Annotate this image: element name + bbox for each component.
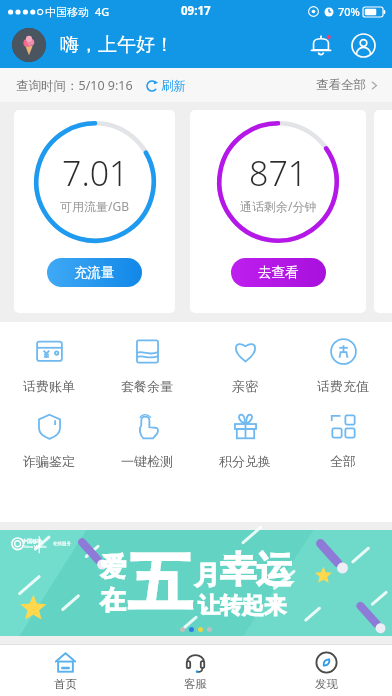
button[interactable]: 871 <box>190 110 366 313</box>
staticText: 7.01 <box>62 150 129 196</box>
staticText: 09:17 <box>181 3 211 19</box>
staticText: 亲密 <box>232 378 258 394</box>
button[interactable]: 一键检测 <box>98 411 196 469</box>
staticText: 让 <box>198 592 220 620</box>
staticText: 积分兑换 <box>219 453 271 469</box>
button[interactable]: 积分兑换 <box>196 411 294 469</box>
staticText: 客服 <box>184 677 207 691</box>
staticText: 可用流量/GB <box>60 198 130 214</box>
button[interactable]: 查看全部 <box>316 77 379 93</box>
button[interactable]: 套餐余量 <box>98 336 196 394</box>
button[interactable]: 去查看 <box>231 258 326 287</box>
staticText: 70% <box>338 4 360 19</box>
button[interactable]: Profile <box>348 30 378 60</box>
staticText: 刷新 <box>161 78 186 94</box>
staticText: 五 <box>128 543 192 624</box>
staticText: 4G <box>95 4 110 19</box>
staticText: 爱 <box>100 551 126 584</box>
button[interactable]: 发现 <box>261 645 392 696</box>
staticText: 通话剩余/分钟 <box>240 198 317 214</box>
staticText: 话费账单 <box>23 378 75 394</box>
staticText: 全部 <box>330 453 356 469</box>
button[interactable]: 充流量 <box>47 258 142 287</box>
button[interactable]: 7.01 <box>14 110 175 313</box>
button[interactable]: 诈骗鉴定 <box>0 411 98 469</box>
button[interactable]: 客服 <box>130 645 261 696</box>
button[interactable]: 话费账单 <box>0 336 98 394</box>
staticText: 一键检测 <box>121 453 173 469</box>
button[interactable]: Promotion banner <box>0 530 392 636</box>
staticText: 查看全部 <box>316 77 366 93</box>
staticText: 在线服务 <box>53 541 71 547</box>
button[interactable]: 亲密 <box>196 336 294 394</box>
staticText: 转起来 <box>220 592 286 620</box>
button[interactable]: 全部 <box>294 411 392 469</box>
staticText: 月 <box>194 559 220 592</box>
staticText: 充流量 <box>74 264 115 281</box>
staticText: 去查看 <box>258 264 299 281</box>
button[interactable]: 刷新 <box>146 78 186 94</box>
staticText: 发现 <box>315 677 338 691</box>
staticText: 871 <box>249 150 308 196</box>
staticText: 在 <box>100 584 126 617</box>
staticText: 幸运 <box>220 547 292 592</box>
button[interactable]: Avatar <box>12 28 46 62</box>
staticText: 套餐余量 <box>121 378 173 394</box>
staticText: 中国移动 <box>45 5 89 19</box>
staticText: 诈骗鉴定 <box>23 453 75 469</box>
staticText: 首页 <box>54 677 77 691</box>
staticText: 嗨，上午好！ <box>60 33 174 57</box>
button[interactable]: 首页 <box>0 645 130 696</box>
button[interactable]: 话费充值 <box>294 336 392 394</box>
staticText: 中国移动 <box>22 538 42 544</box>
button[interactable]: Notifications <box>306 30 336 60</box>
staticText: China Mobile <box>22 544 47 549</box>
staticText: 查询时间：5/10 9:16 <box>16 77 133 94</box>
staticText: 话费充值 <box>317 378 369 394</box>
